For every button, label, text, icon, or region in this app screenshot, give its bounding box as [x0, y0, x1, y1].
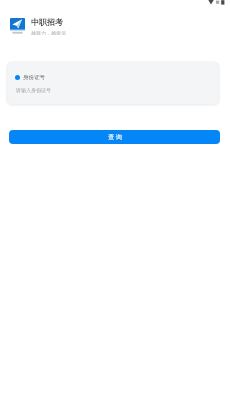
button[interactable]: 查 询: [9, 130, 220, 144]
staticText: 查 询: [108, 133, 122, 141]
staticText: 中职招考: [31, 17, 63, 27]
staticText: 身份证号: [23, 74, 45, 81]
staticText: 请输入身份证号: [16, 87, 51, 93]
other: Status icons: [205, 0, 227, 6]
button[interactable]: 身份证号: [8, 62, 218, 104]
button[interactable]: 中职招考: [10, 17, 66, 35]
staticText: 越努力，越幸运: [31, 30, 66, 35]
